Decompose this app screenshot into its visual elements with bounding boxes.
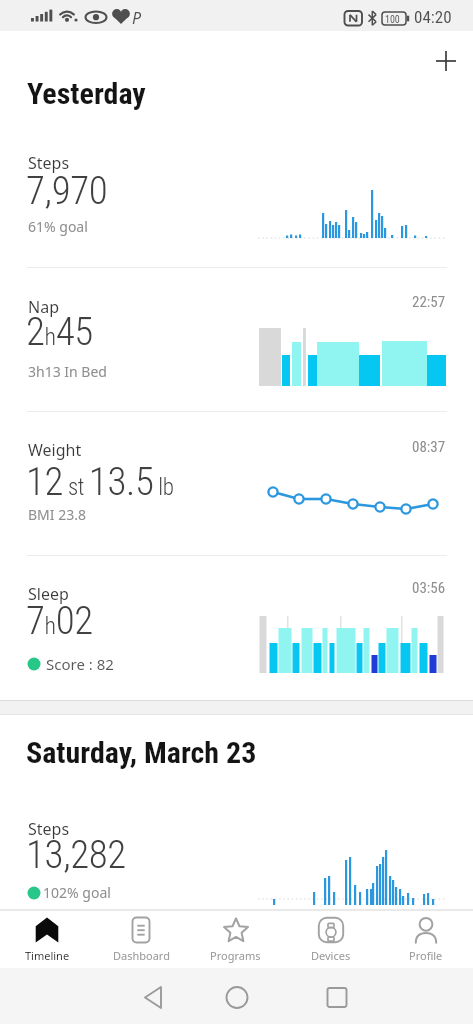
- button[interactable]: [0, 135, 473, 264]
- button[interactable]: [288, 968, 366, 1024]
- button[interactable]: [0, 419, 473, 554]
- staticText: 61% goal: [28, 217, 88, 236]
- staticText: Nap: [28, 296, 59, 318]
- staticText: Steps: [28, 152, 70, 174]
- staticText: 7h02: [26, 598, 93, 644]
- staticText: P: [132, 7, 142, 29]
- button[interactable]: Profile: [378, 911, 473, 968]
- staticText: Timeline: [25, 948, 70, 963]
- staticText: 7,970: [26, 168, 108, 214]
- button[interactable]: [120, 968, 198, 1024]
- button[interactable]: Devices: [283, 911, 378, 968]
- staticText: Weight: [28, 439, 82, 461]
- staticText: 03:56: [412, 579, 446, 597]
- button[interactable]: [198, 968, 276, 1024]
- staticText: Programs: [210, 948, 261, 963]
- staticText: Profile: [409, 948, 443, 963]
- staticText: 13,282: [26, 832, 126, 878]
- button[interactable]: [0, 268, 473, 415]
- staticText: Steps: [28, 818, 70, 840]
- staticText: 102% goal: [43, 883, 111, 902]
- staticText: BMI 23.8: [28, 505, 86, 524]
- staticText: 100: [385, 14, 400, 26]
- button[interactable]: [0, 796, 473, 910]
- staticText: Devices: [311, 948, 351, 963]
- staticText: 08:37: [412, 438, 446, 456]
- staticText: Yesterday: [27, 76, 146, 111]
- staticText: 12 st 13.5 lb: [26, 459, 174, 505]
- staticText: 2h45: [26, 309, 93, 355]
- button[interactable]: Timeline: [0, 911, 94, 968]
- button[interactable]: Programs: [188, 911, 283, 968]
- button[interactable]: [0, 558, 473, 695]
- button[interactable]: Dashboard: [94, 911, 188, 968]
- staticText: Score : 82: [46, 654, 114, 674]
- staticText: 04:20: [414, 7, 452, 27]
- staticText: 22:57: [412, 293, 446, 311]
- button[interactable]: [428, 43, 464, 79]
- staticText: Dashboard: [113, 948, 170, 963]
- staticText: Sleep: [28, 583, 69, 605]
- staticText: 3h13 In Bed: [28, 362, 107, 381]
- staticText: Saturday, March 23: [26, 735, 257, 770]
